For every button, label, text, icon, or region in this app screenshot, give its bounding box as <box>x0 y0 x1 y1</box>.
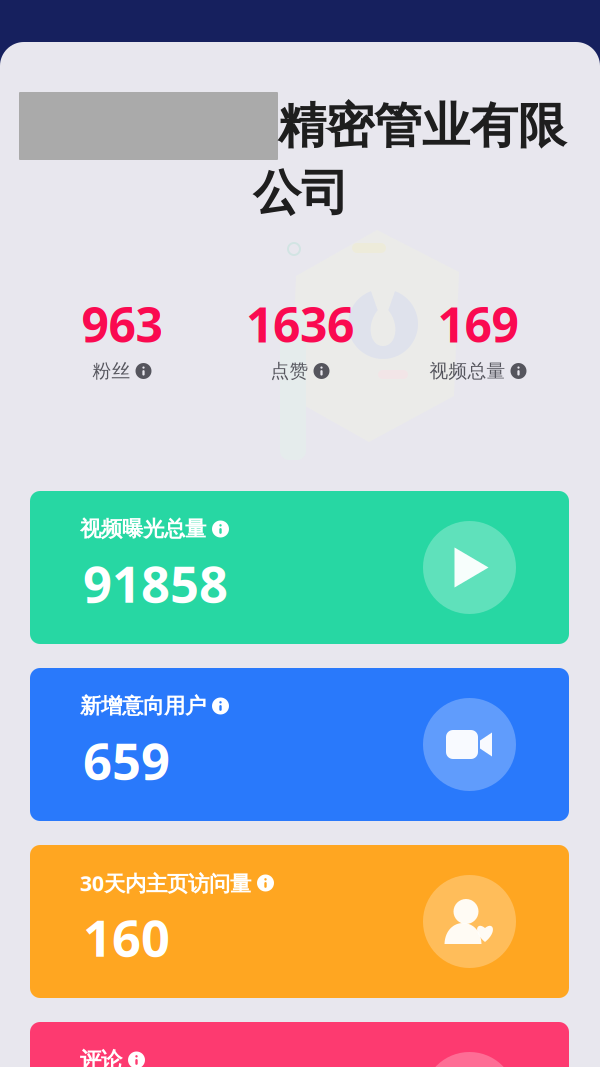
staticText: 963 <box>81 292 162 356</box>
staticText: 91858 <box>83 549 228 617</box>
staticText: 公司 <box>253 163 349 222</box>
button[interactable]: 新增意向用户 <box>30 668 569 821</box>
button[interactable]: 30天内主页访问量 <box>30 845 569 998</box>
staticText: 视频总量 <box>429 359 505 382</box>
staticText: 粉丝 <box>92 359 130 382</box>
staticText: 精密管业有限 <box>278 96 566 155</box>
button[interactable]: 视频曝光总量 <box>30 491 569 644</box>
button[interactable]: 1636 <box>211 302 389 381</box>
staticText: 659 <box>83 726 170 794</box>
staticText: 160 <box>83 903 170 971</box>
staticText: 30天内主页访问量 <box>80 869 251 897</box>
button[interactable]: 评论 <box>30 1022 569 1067</box>
staticText: 视频曝光总量 <box>80 516 206 542</box>
staticText: 点赞 <box>270 359 308 382</box>
staticText: 评论 <box>80 1047 122 1067</box>
button[interactable]: 169 <box>389 302 567 381</box>
button[interactable]: 963 <box>33 302 211 381</box>
staticText: 1636 <box>246 292 354 356</box>
staticText: 169 <box>437 292 518 356</box>
staticText: 新增意向用户 <box>80 693 206 719</box>
